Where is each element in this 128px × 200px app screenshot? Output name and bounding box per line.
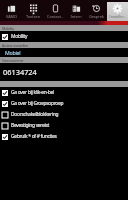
staticText: Mobility — [2, 26, 14, 31]
staticText: VAMO — [6, 14, 17, 19]
staticText: Mobiel — [5, 49, 21, 56]
staticText: Instellin.. — [109, 14, 126, 19]
button[interactable]: 06134724 — [0, 63, 128, 81]
button[interactable]: Intern — [65, 2, 86, 21]
button[interactable]: VAMO — [0, 2, 22, 21]
button[interactable]: Gesprekken — [86, 2, 107, 21]
staticText: Gsm-nummer — [2, 58, 24, 63]
staticText: Bevestiging vereist — [11, 122, 49, 129]
staticText: Mobility — [11, 33, 28, 40]
button[interactable]: Instellingen — [107, 2, 128, 21]
staticText: Toetsen — [26, 14, 40, 19]
button[interactable]: Ga over bij klik-en-bel — [0, 87, 128, 98]
staticText: 06134724 — [3, 67, 37, 77]
staticText: Intern — [70, 14, 82, 19]
staticText: Ga over bij klik-en-bel — [11, 89, 55, 96]
staticText: Gesprek — [89, 14, 104, 19]
staticText: Ga over bij Groepsoproep — [11, 100, 64, 107]
button[interactable]: Doorschakelblokkering — [0, 109, 128, 120]
button[interactable]: Mobiel — [0, 48, 128, 57]
staticText: Doorschakelblokkering — [11, 111, 59, 118]
button[interactable]: Gebruik * of # functies — [0, 131, 128, 142]
button[interactable]: Mobility — [0, 31, 128, 42]
staticText: Actieve toestellen — [2, 43, 29, 48]
staticText: Contact.. — [47, 14, 63, 19]
button[interactable]: Bevestiging vereist — [0, 120, 128, 131]
button[interactable]: Contacten — [44, 2, 65, 21]
staticText: Gebruik * of # functies — [11, 133, 57, 140]
button[interactable]: Ga over bij Groepsoproep — [0, 98, 128, 109]
button[interactable]: Toetsen — [22, 2, 44, 21]
